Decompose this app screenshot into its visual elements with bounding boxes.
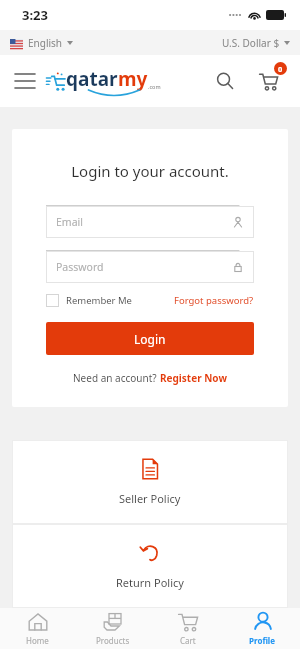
staticText: English	[28, 36, 63, 50]
staticText: Seller Policy	[119, 491, 181, 506]
button[interactable]: U.S. Dollar $	[222, 36, 290, 50]
staticText: Register Now	[160, 371, 227, 385]
staticText: .com	[148, 83, 161, 90]
staticText: Profile	[249, 635, 276, 646]
button[interactable]: Home	[0, 608, 75, 649]
button[interactable]: Return Policy	[12, 524, 288, 608]
button[interactable]: Seller Policy	[12, 440, 288, 524]
staticText: U.S. Dollar $	[222, 36, 280, 50]
button[interactable]: Login	[46, 322, 254, 355]
staticText: Remember Me	[66, 294, 132, 307]
staticText: Login	[134, 331, 166, 347]
staticText: Need an account?	[73, 371, 160, 385]
staticText: Return Policy	[116, 575, 184, 590]
button[interactable]: English	[10, 36, 73, 50]
staticText: Products	[96, 635, 130, 646]
button[interactable]: Menu	[8, 64, 42, 98]
staticText: Forgot password?	[174, 294, 254, 307]
button[interactable]: Cart	[150, 608, 225, 649]
button[interactable]: Profile	[225, 608, 300, 649]
staticText: 0	[278, 64, 283, 74]
button[interactable]: Search	[208, 64, 242, 98]
staticText: 3:23	[22, 6, 48, 24]
button[interactable]: Cart	[250, 63, 286, 99]
button[interactable]: Forgot password?	[174, 294, 254, 307]
button[interactable]: Products	[75, 608, 150, 649]
staticText: my	[118, 66, 148, 92]
staticText: Login to your account.	[46, 161, 254, 181]
button[interactable]: Remember Me	[46, 294, 132, 307]
staticText: Email	[56, 215, 83, 229]
staticText: Password	[56, 260, 104, 274]
button[interactable]: Register Now	[160, 371, 227, 385]
staticText: Cart	[180, 635, 196, 646]
button[interactable]: Password	[46, 251, 254, 283]
button[interactable]: Email	[46, 206, 254, 238]
staticText: Home	[26, 635, 49, 646]
staticText: qatar	[66, 66, 118, 92]
